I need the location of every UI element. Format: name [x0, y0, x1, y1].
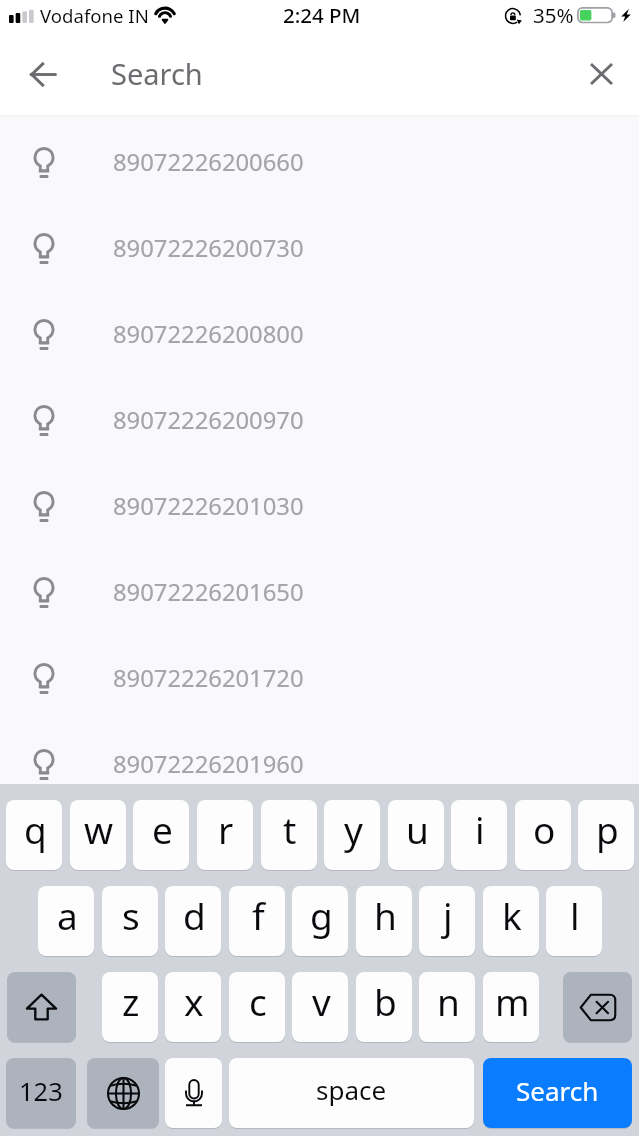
button[interactable]: l	[546, 886, 602, 956]
button[interactable]: y	[324, 800, 380, 870]
button[interactable]: c	[229, 972, 285, 1042]
button[interactable]: Clear	[573, 46, 629, 102]
staticText: t	[283, 804, 297, 854]
button[interactable]: Back	[15, 46, 71, 102]
staticText: Vodafone IN	[40, 3, 149, 28]
button[interactable]: j	[419, 886, 475, 956]
button[interactable]: u	[388, 800, 444, 870]
button[interactable]: p	[578, 800, 634, 870]
staticText: space	[316, 1072, 387, 1107]
button[interactable]: o	[515, 800, 571, 870]
button[interactable]: Numbers	[6, 1058, 76, 1128]
button[interactable]: i	[451, 800, 507, 870]
staticText: s	[122, 890, 140, 940]
button[interactable]: 89072226200660	[0, 117, 639, 203]
button[interactable]: r	[197, 800, 253, 870]
button[interactable]: Change keyboard	[87, 1058, 159, 1128]
staticText: Search	[516, 1073, 599, 1108]
button[interactable]: 89072226201650	[0, 547, 639, 633]
button[interactable]: a	[38, 886, 94, 956]
button[interactable]: s	[102, 886, 158, 956]
button[interactable]: d	[165, 886, 221, 956]
staticText: a	[57, 890, 78, 940]
staticText: 89072226201650	[113, 576, 304, 608]
staticText: n	[437, 976, 460, 1026]
staticText: 89072226200970	[113, 404, 304, 436]
staticText: v	[312, 976, 331, 1026]
staticText: l	[570, 890, 580, 940]
button[interactable]: w	[70, 800, 126, 870]
button[interactable]: v	[292, 972, 348, 1042]
button[interactable]: x	[165, 972, 221, 1042]
staticText: u	[406, 804, 429, 854]
staticText: j	[443, 890, 453, 940]
staticText: 89072226200800	[113, 318, 304, 350]
staticText: p	[596, 804, 619, 854]
staticText: w	[84, 804, 114, 854]
staticText: x	[184, 976, 204, 1026]
button[interactable]: 89072226200970	[0, 375, 639, 461]
staticText: 89072226201960	[113, 748, 304, 780]
button[interactable]: 89072226200730	[0, 203, 639, 289]
button[interactable]: q	[6, 800, 62, 870]
button[interactable]: b	[356, 972, 412, 1042]
staticText: g	[310, 890, 333, 940]
staticText: e	[152, 804, 173, 854]
staticText: z	[122, 976, 140, 1026]
staticText: h	[374, 890, 397, 940]
staticText: 89072226201030	[113, 490, 304, 522]
staticText: q	[24, 804, 47, 854]
staticText: k	[502, 890, 522, 940]
button[interactable]: Shift	[7, 972, 76, 1042]
button[interactable]: Dictate	[165, 1058, 222, 1128]
button[interactable]: 89072226200800	[0, 289, 639, 375]
button[interactable]: 89072226201720	[0, 633, 639, 719]
staticText: y	[344, 804, 363, 854]
staticText: 35%	[533, 1, 574, 29]
staticText: i	[475, 804, 485, 854]
staticText: 89072226200660	[113, 146, 304, 178]
button[interactable]: e	[133, 800, 189, 870]
button[interactable]: 89072226201960	[0, 719, 639, 805]
button[interactable]: f	[229, 886, 285, 956]
button[interactable]: h	[356, 886, 412, 956]
staticText: r	[218, 804, 234, 854]
staticText: d	[183, 890, 206, 940]
staticText: b	[374, 976, 397, 1026]
button[interactable]: n	[419, 972, 475, 1042]
button[interactable]: t	[261, 800, 317, 870]
staticText: o	[533, 804, 556, 854]
staticText: 89072226200730	[113, 232, 304, 264]
button[interactable]: k	[483, 886, 539, 956]
staticText: 89072226201720	[113, 662, 304, 694]
staticText: c	[249, 976, 267, 1026]
staticText: f	[252, 890, 265, 940]
button[interactable]: 89072226201030	[0, 461, 639, 547]
button[interactable]: z	[102, 972, 158, 1042]
staticText: 2:24 PM	[283, 1, 361, 29]
button[interactable]: space	[229, 1058, 474, 1128]
button[interactable]: Search	[483, 1058, 632, 1128]
staticText: m	[495, 976, 530, 1026]
button[interactable]: Backspace	[563, 972, 632, 1042]
button[interactable]: g	[292, 886, 348, 956]
staticText: Search	[111, 54, 203, 93]
staticText: 123	[19, 1074, 63, 1109]
button[interactable]: m	[483, 972, 539, 1042]
